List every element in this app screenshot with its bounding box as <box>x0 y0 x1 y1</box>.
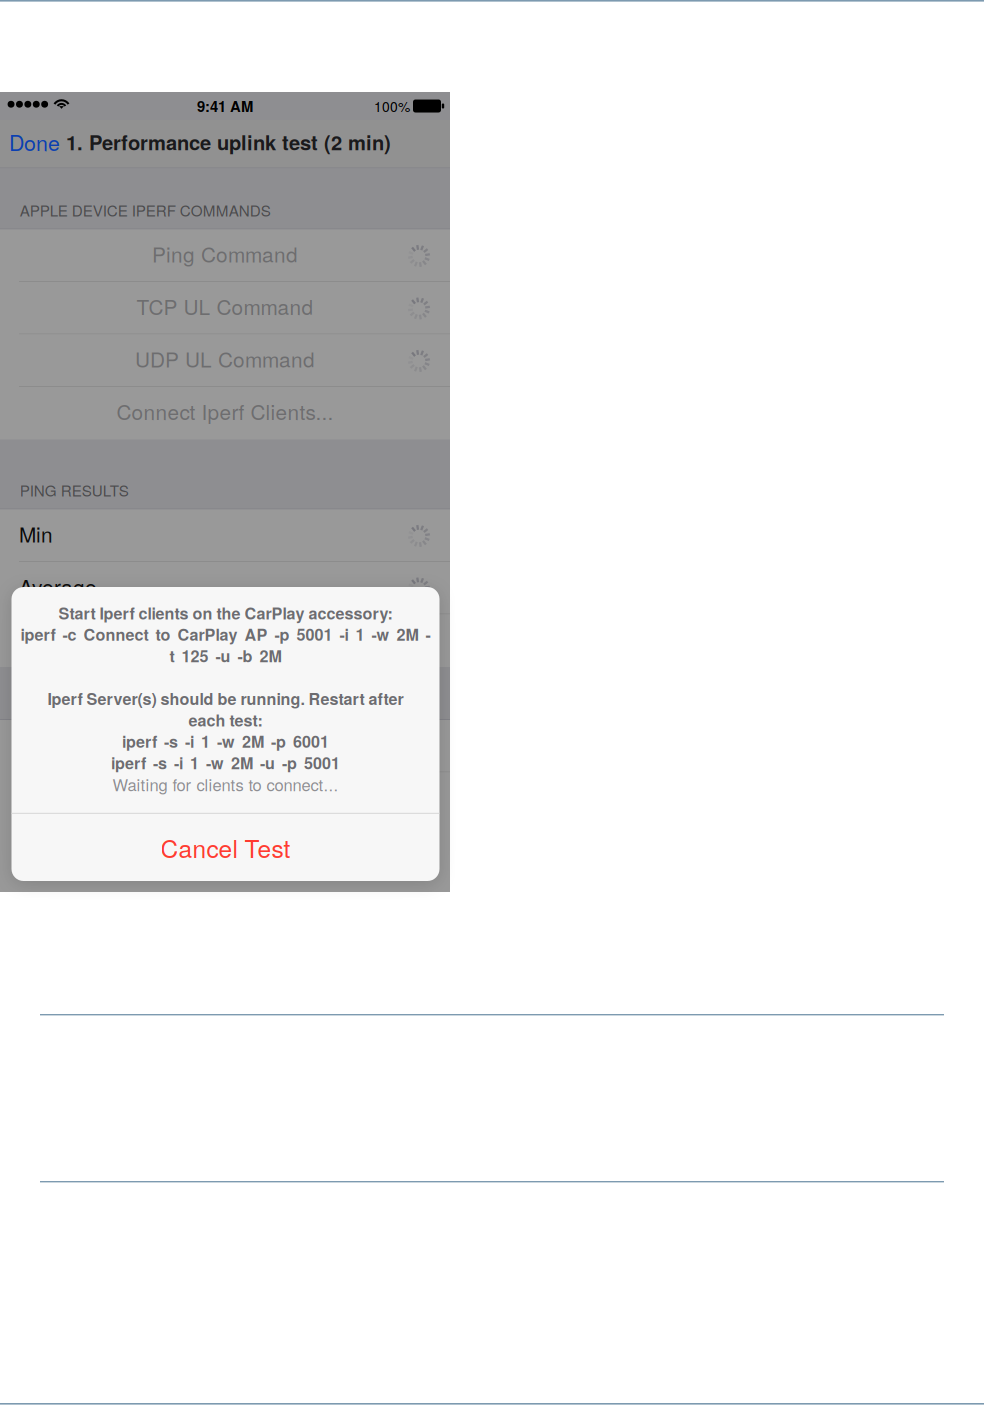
staticText: iperf -c Connect to CarPlay AP -p 5001 -… <box>20 623 430 646</box>
staticText: Waiting for clients to connect... <box>112 772 338 796</box>
button[interactable]: UDP UL Command <box>0 334 450 387</box>
button[interactable]: Max <box>0 614 450 667</box>
staticText: Start Iperf clients on the CarPlay acces… <box>58 601 392 624</box>
staticText: TCP UL Command <box>136 291 313 321</box>
staticText: UDP UL Command <box>135 344 315 373</box>
staticText: Ping Command <box>152 239 298 268</box>
button[interactable]: TCP UL Command <box>0 282 450 334</box>
staticText: each test: <box>188 708 262 731</box>
staticText: t 125 -u -b 2M <box>169 644 281 667</box>
button[interactable]: Cancel Test <box>11 814 439 881</box>
staticText: PING RESULTS <box>20 479 129 501</box>
staticText: APPLE DEVICE IPERF COMMANDS <box>20 199 271 221</box>
staticText: iperf -s -i 1 -w 2M -u -p 5001 <box>111 751 340 774</box>
staticText: 9:41 AM <box>197 95 253 117</box>
staticText: Average <box>19 571 97 601</box>
staticText: Max <box>19 624 58 653</box>
staticText: Min <box>19 519 53 548</box>
staticText: Cancel Test <box>160 830 290 865</box>
staticText: Iperf Server(s) should be running. Resta… <box>47 687 403 710</box>
staticText: 1. Performance uplink test (2 min) <box>66 128 391 156</box>
button[interactable]: Connect Iperf Clients... <box>0 387 450 439</box>
staticText: 100% <box>374 96 410 116</box>
button[interactable]: Ping Command <box>0 229 450 282</box>
button[interactable] <box>0 720 450 772</box>
staticText: Done <box>9 126 60 157</box>
button[interactable] <box>0 772 450 825</box>
button[interactable]: Average <box>0 562 450 614</box>
staticText: iperf -s -i 1 -w 2M -p 6001 <box>122 730 329 753</box>
button[interactable]: Done <box>9 125 65 159</box>
button[interactable]: Min <box>0 509 450 562</box>
staticText: Connect Iperf Clients... <box>116 396 333 426</box>
